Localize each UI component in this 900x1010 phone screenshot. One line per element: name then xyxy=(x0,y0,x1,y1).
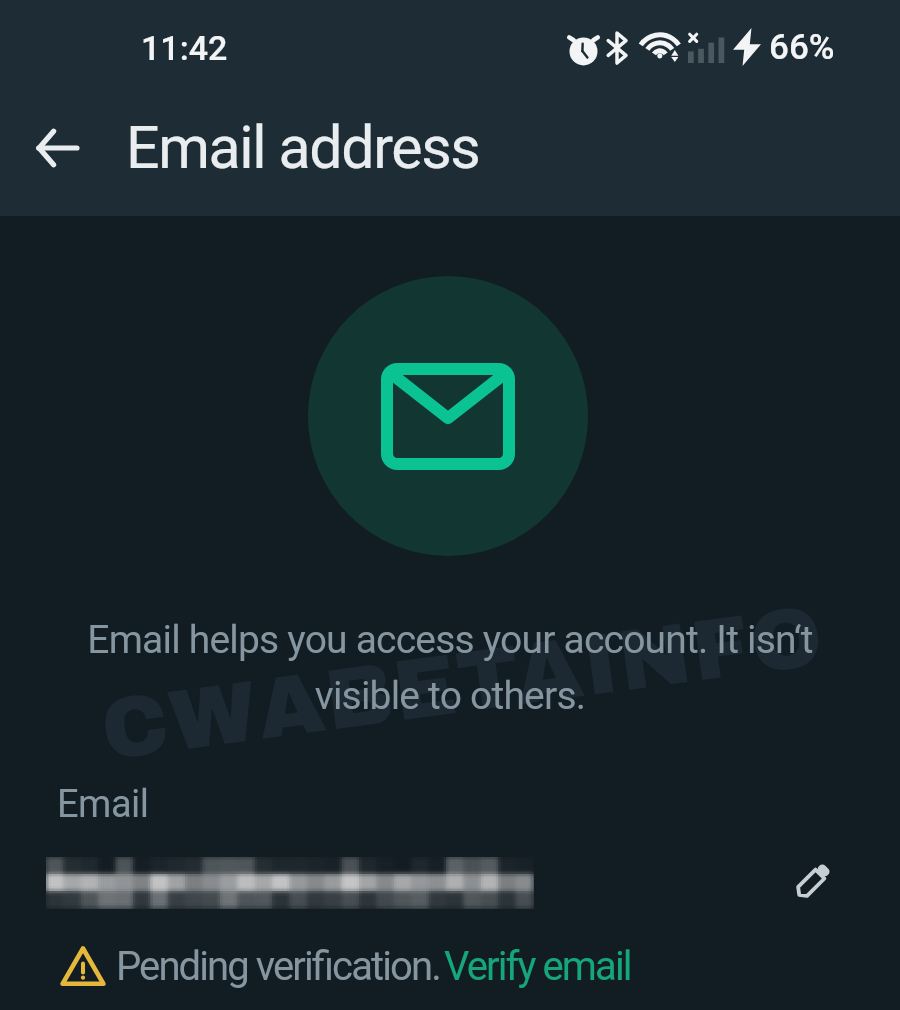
staticText: Email address xyxy=(126,113,480,182)
staticText: Verify email xyxy=(444,943,631,990)
button[interactable]: Verify email xyxy=(444,943,631,990)
button[interactable]: Back xyxy=(17,108,97,188)
staticText: CWABETAINFO xyxy=(96,588,831,778)
staticText: Pending verification. xyxy=(116,943,440,990)
button[interactable]: Edit email xyxy=(773,841,853,921)
staticText: Email helps you access your account. It … xyxy=(0,617,900,718)
staticText: 66% xyxy=(769,27,835,68)
staticText: 11:42 xyxy=(141,28,228,68)
staticText: Email xyxy=(57,782,149,827)
